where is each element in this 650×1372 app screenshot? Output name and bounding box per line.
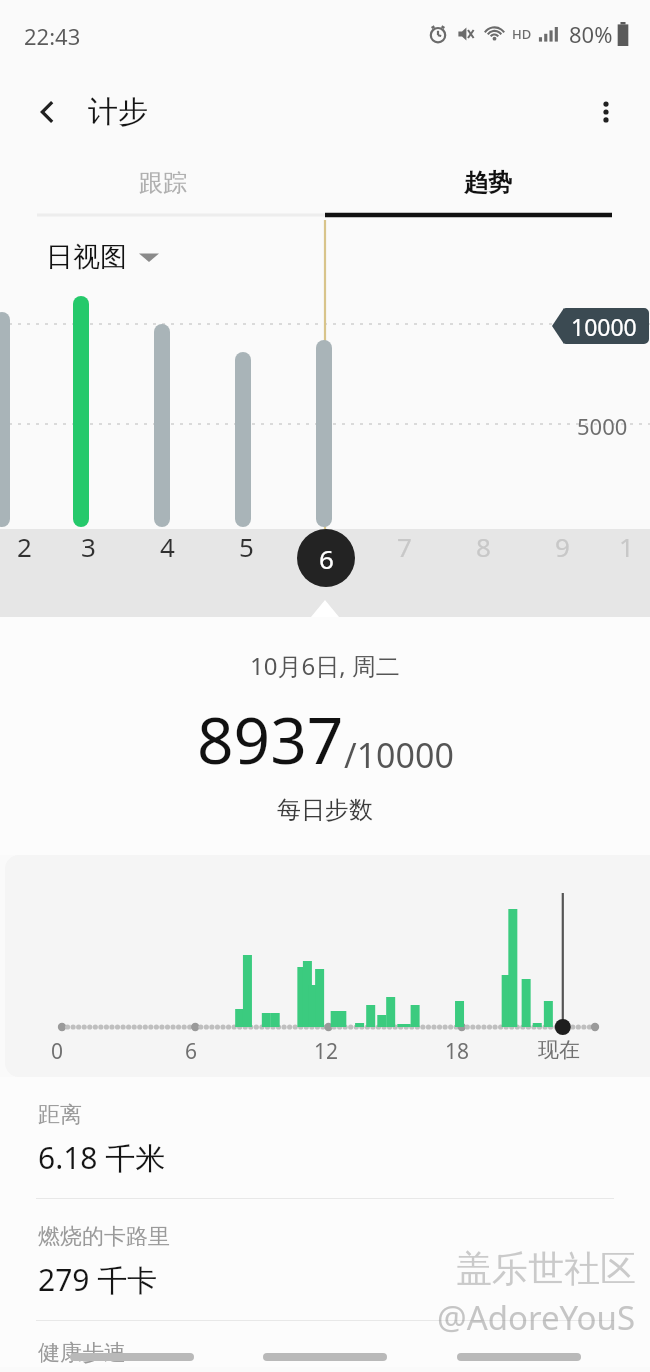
button[interactable]: Navigation <box>70 1353 194 1361</box>
button[interactable]: 1 <box>602 529 650 564</box>
button[interactable]: 距离 <box>0 1077 650 1198</box>
staticText: 8 <box>476 529 491 564</box>
staticText: HD <box>512 25 532 43</box>
staticText: 10月6日, 周二 <box>250 649 400 682</box>
staticText: 2 <box>17 529 32 564</box>
button[interactable]: 7 <box>365 529 444 564</box>
staticText: 燃烧的卡路里 <box>38 1223 170 1251</box>
staticText: 现在 <box>538 1037 580 1063</box>
staticText: 趋势 <box>464 168 512 198</box>
staticText: 0 <box>51 1037 64 1066</box>
button[interactable]: 燃烧的卡路里 <box>0 1199 650 1320</box>
button[interactable]: Back <box>26 90 70 134</box>
button[interactable]: 9 <box>523 529 602 564</box>
staticText: 健康步速 <box>38 1339 126 1367</box>
staticText: 3 <box>81 529 96 564</box>
staticText: 80% <box>569 19 613 49</box>
button[interactable]: 跟踪 <box>0 156 325 218</box>
button[interactable]: 6 <box>286 529 365 587</box>
staticText: 12 <box>314 1037 339 1066</box>
staticText: /10000 <box>344 732 454 778</box>
button[interactable]: 2 <box>0 529 49 564</box>
staticText: @AdoreYouS <box>437 1295 636 1340</box>
staticText: 279 千卡 <box>38 1259 158 1300</box>
staticText: 跟踪 <box>139 168 187 198</box>
staticText: 10000 <box>571 311 637 342</box>
button[interactable]: Navigation <box>457 1353 581 1361</box>
button[interactable]: 健康步速 <box>0 1321 650 1367</box>
staticText: 7 <box>397 529 412 564</box>
button[interactable]: More options <box>584 90 628 134</box>
button[interactable]: 趋势 <box>325 156 650 218</box>
button[interactable]: 4 <box>128 529 207 564</box>
staticText: 计步 <box>88 93 148 131</box>
staticText: 6 <box>319 541 334 576</box>
button[interactable]: 8 <box>444 529 523 564</box>
button[interactable]: 5 <box>207 529 286 564</box>
staticText: 8937 <box>197 696 344 783</box>
staticText: 1 <box>619 529 634 564</box>
button[interactable]: 0 <box>5 855 650 1077</box>
staticText: 每日步数 <box>277 795 373 825</box>
button[interactable]: 3 <box>49 529 128 564</box>
staticText: 22:43 <box>24 21 81 51</box>
button[interactable]: 日视图 <box>46 234 159 280</box>
staticText: 日视图 <box>46 240 127 274</box>
staticText: 5 <box>239 529 254 564</box>
staticText: 9 <box>555 529 570 564</box>
staticText: 18 <box>445 1037 470 1066</box>
staticText: 6 <box>185 1037 198 1066</box>
staticText: 6.18 千米 <box>38 1137 166 1178</box>
staticText: 盖乐世社区 <box>456 1246 636 1291</box>
button[interactable]: Navigation <box>263 1353 387 1361</box>
staticText: 5000 <box>577 411 628 441</box>
staticText: 距离 <box>38 1101 82 1129</box>
staticText: 4 <box>160 529 175 564</box>
